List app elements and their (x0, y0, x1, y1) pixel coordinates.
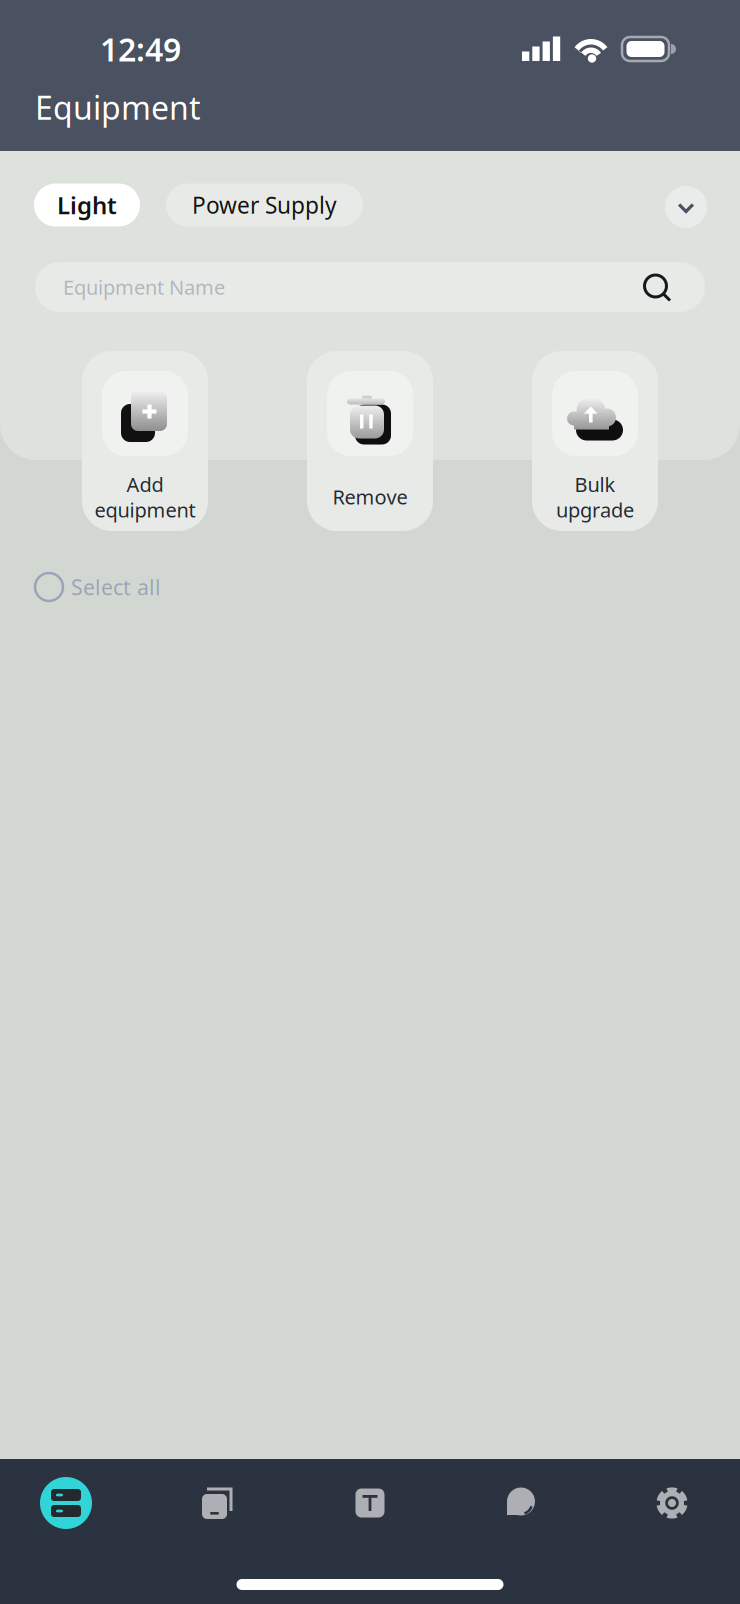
button[interactable]: Light (34, 183, 140, 226)
staticText: Remove (332, 483, 407, 510)
button[interactable]: Expand filters (660, 179, 712, 231)
staticText: Equipment Name (63, 274, 225, 300)
button[interactable]: Remove (307, 351, 433, 531)
staticText: Light (57, 189, 117, 221)
staticText: Power Supply (192, 190, 337, 220)
button[interactable]: Templates (158, 1467, 278, 1539)
button[interactable]: Messages (461, 1467, 581, 1539)
button[interactable]: Settings (612, 1467, 732, 1539)
button[interactable]: Bulk (532, 351, 658, 531)
staticText: Bulk (574, 471, 615, 497)
staticText: upgrade (556, 496, 634, 523)
staticText: Select all (71, 573, 161, 601)
button[interactable]: Power Supply (166, 183, 363, 226)
button[interactable]: Add (82, 351, 208, 531)
staticText: Equipment (35, 86, 201, 128)
button[interactable]: Equipment (6, 1467, 126, 1539)
button[interactable]: Labels (310, 1467, 430, 1539)
staticText: 12:49 (100, 28, 181, 70)
button[interactable]: Select all (0, 567, 740, 607)
staticText: equipment (94, 496, 195, 523)
staticText: Add (126, 471, 163, 497)
